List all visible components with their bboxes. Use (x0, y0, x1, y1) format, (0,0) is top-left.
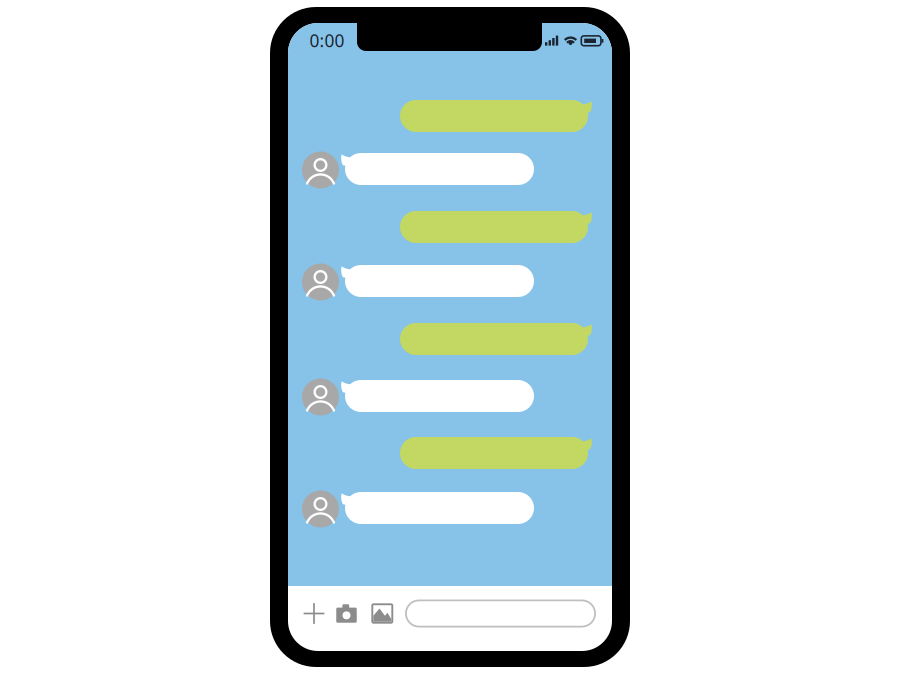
button[interactable]: Sent message (400, 100, 594, 132)
button[interactable]: Photos (366, 597, 398, 629)
button[interactable]: Sent message (400, 211, 594, 243)
button[interactable]: Sent message (400, 437, 594, 469)
button[interactable]: Received message (339, 153, 534, 185)
staticText: 0:00 (309, 29, 344, 52)
button[interactable]: Received message (339, 492, 534, 524)
button[interactable]: Sent message (400, 323, 594, 355)
button[interactable]: Message (405, 599, 596, 627)
button[interactable]: Received message (339, 380, 534, 412)
button[interactable]: Contact (302, 263, 339, 300)
button[interactable]: Received message (339, 265, 534, 297)
button[interactable]: Contact (302, 378, 339, 415)
button[interactable]: Contact (302, 490, 339, 527)
button[interactable]: Camera (330, 597, 362, 629)
button[interactable]: Add attachment (298, 597, 330, 629)
button[interactable]: Contact (302, 151, 339, 188)
